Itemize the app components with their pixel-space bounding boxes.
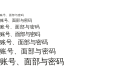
- staticText: 账号、面部与密码: [0, 13, 24, 17]
- staticText: 账号、面部与密码: [0, 47, 56, 55]
- staticText: 账号、面部与密码: [0, 56, 64, 66]
- staticText: 账号、面部与密码: [0, 38, 48, 46]
- staticText: 账号、面部与密码: [0, 24, 40, 30]
- staticText: 账号、面部与密码: [0, 31, 40, 37]
- staticText: 账号、面部与密码: [0, 18, 32, 23]
